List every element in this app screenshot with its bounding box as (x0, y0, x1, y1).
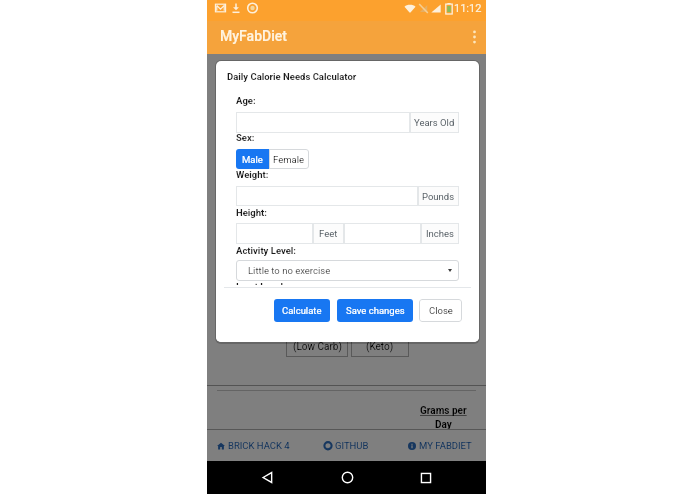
staticText: Age: (236, 95, 256, 106)
staticText: Day (435, 419, 452, 431)
staticText: Calculate (282, 305, 322, 316)
button[interactable]: (Low Carb) (286, 336, 348, 357)
staticText: MY FABDIET (419, 440, 472, 451)
staticText: (Keto) (366, 341, 394, 353)
staticText: Grams per (420, 405, 467, 417)
staticText: BRICK HACK 4 (228, 440, 290, 451)
button[interactable]: Back (247, 461, 287, 494)
staticText: Years Old (414, 117, 455, 128)
button[interactable]: Little to no exercise (236, 260, 459, 281)
staticText: MyFabDiet (220, 28, 287, 44)
staticText: Pounds (422, 191, 455, 202)
button[interactable]: Save changes (337, 299, 413, 322)
staticText: Input Level: (236, 283, 286, 285)
button[interactable]: Close (419, 299, 462, 322)
button[interactable]: Calculate (274, 299, 330, 322)
staticText: Male (242, 154, 263, 165)
staticText: (Low Carb) (293, 341, 342, 353)
staticText: GITHUB (335, 440, 369, 451)
button[interactable]: (Keto) (351, 336, 409, 357)
staticText: Female (273, 154, 305, 165)
button[interactable]: Male (236, 149, 269, 169)
staticText: Feet (319, 228, 338, 239)
button[interactable]: Recent apps (406, 461, 446, 494)
staticText: 11:12 (454, 2, 482, 15)
staticText: Save changes (346, 305, 405, 316)
staticText: Little to no exercise (248, 265, 331, 276)
staticText: Sex: (236, 132, 255, 143)
button[interactable]: Female (269, 149, 309, 169)
button[interactable]: More options (462, 21, 486, 54)
staticText: Close (429, 305, 453, 316)
staticText: Daily Calorie Needs Calculator (227, 71, 357, 82)
button[interactable]: GITHUB (300, 430, 393, 461)
staticText: Weight: (236, 169, 269, 180)
staticText: Height: (236, 207, 267, 218)
button[interactable]: BRICK HACK 4 (207, 430, 300, 461)
staticText: Activity Level: (236, 245, 297, 256)
staticText: Inches (426, 228, 454, 239)
button[interactable]: MY FABDIET (393, 430, 486, 461)
button[interactable]: Home (327, 461, 367, 494)
